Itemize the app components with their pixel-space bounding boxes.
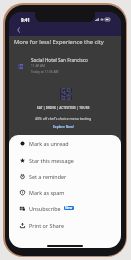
staticText: Star this message [29, 157, 74, 164]
button[interactable]: Unsubscribe [9, 200, 121, 216]
staticText: New [65, 206, 73, 210]
staticText: 11:48 AM [31, 64, 45, 68]
staticText: Social Hotel San Francisco [31, 57, 88, 63]
button[interactable]: Back [11, 23, 25, 37]
staticText: EAT | DRINK | ACTIVITIES | TOURS [37, 106, 90, 110]
staticText: More for less! Experience the city [14, 38, 104, 46]
staticText: Mark as spam [29, 189, 65, 196]
staticText: Explore Now! [53, 125, 74, 129]
button[interactable]: Print or Share [9, 217, 121, 233]
staticText: Unsubscribe [29, 205, 61, 212]
staticText: Mark as unread [29, 140, 69, 147]
staticText: Today at 11:35 AM [31, 70, 59, 74]
staticText: Set a reminder [29, 173, 67, 180]
staticText: 9:41 [21, 17, 30, 23]
button[interactable]: Mark as unread [9, 135, 121, 151]
button[interactable]: Mark as spam [9, 184, 121, 200]
staticText: Print or Share [29, 222, 64, 229]
button[interactable]: Star this message [9, 152, 121, 168]
button[interactable]: Set a reminder [9, 168, 121, 184]
staticText: 40% off chef's choice menu tasting [35, 116, 92, 121]
